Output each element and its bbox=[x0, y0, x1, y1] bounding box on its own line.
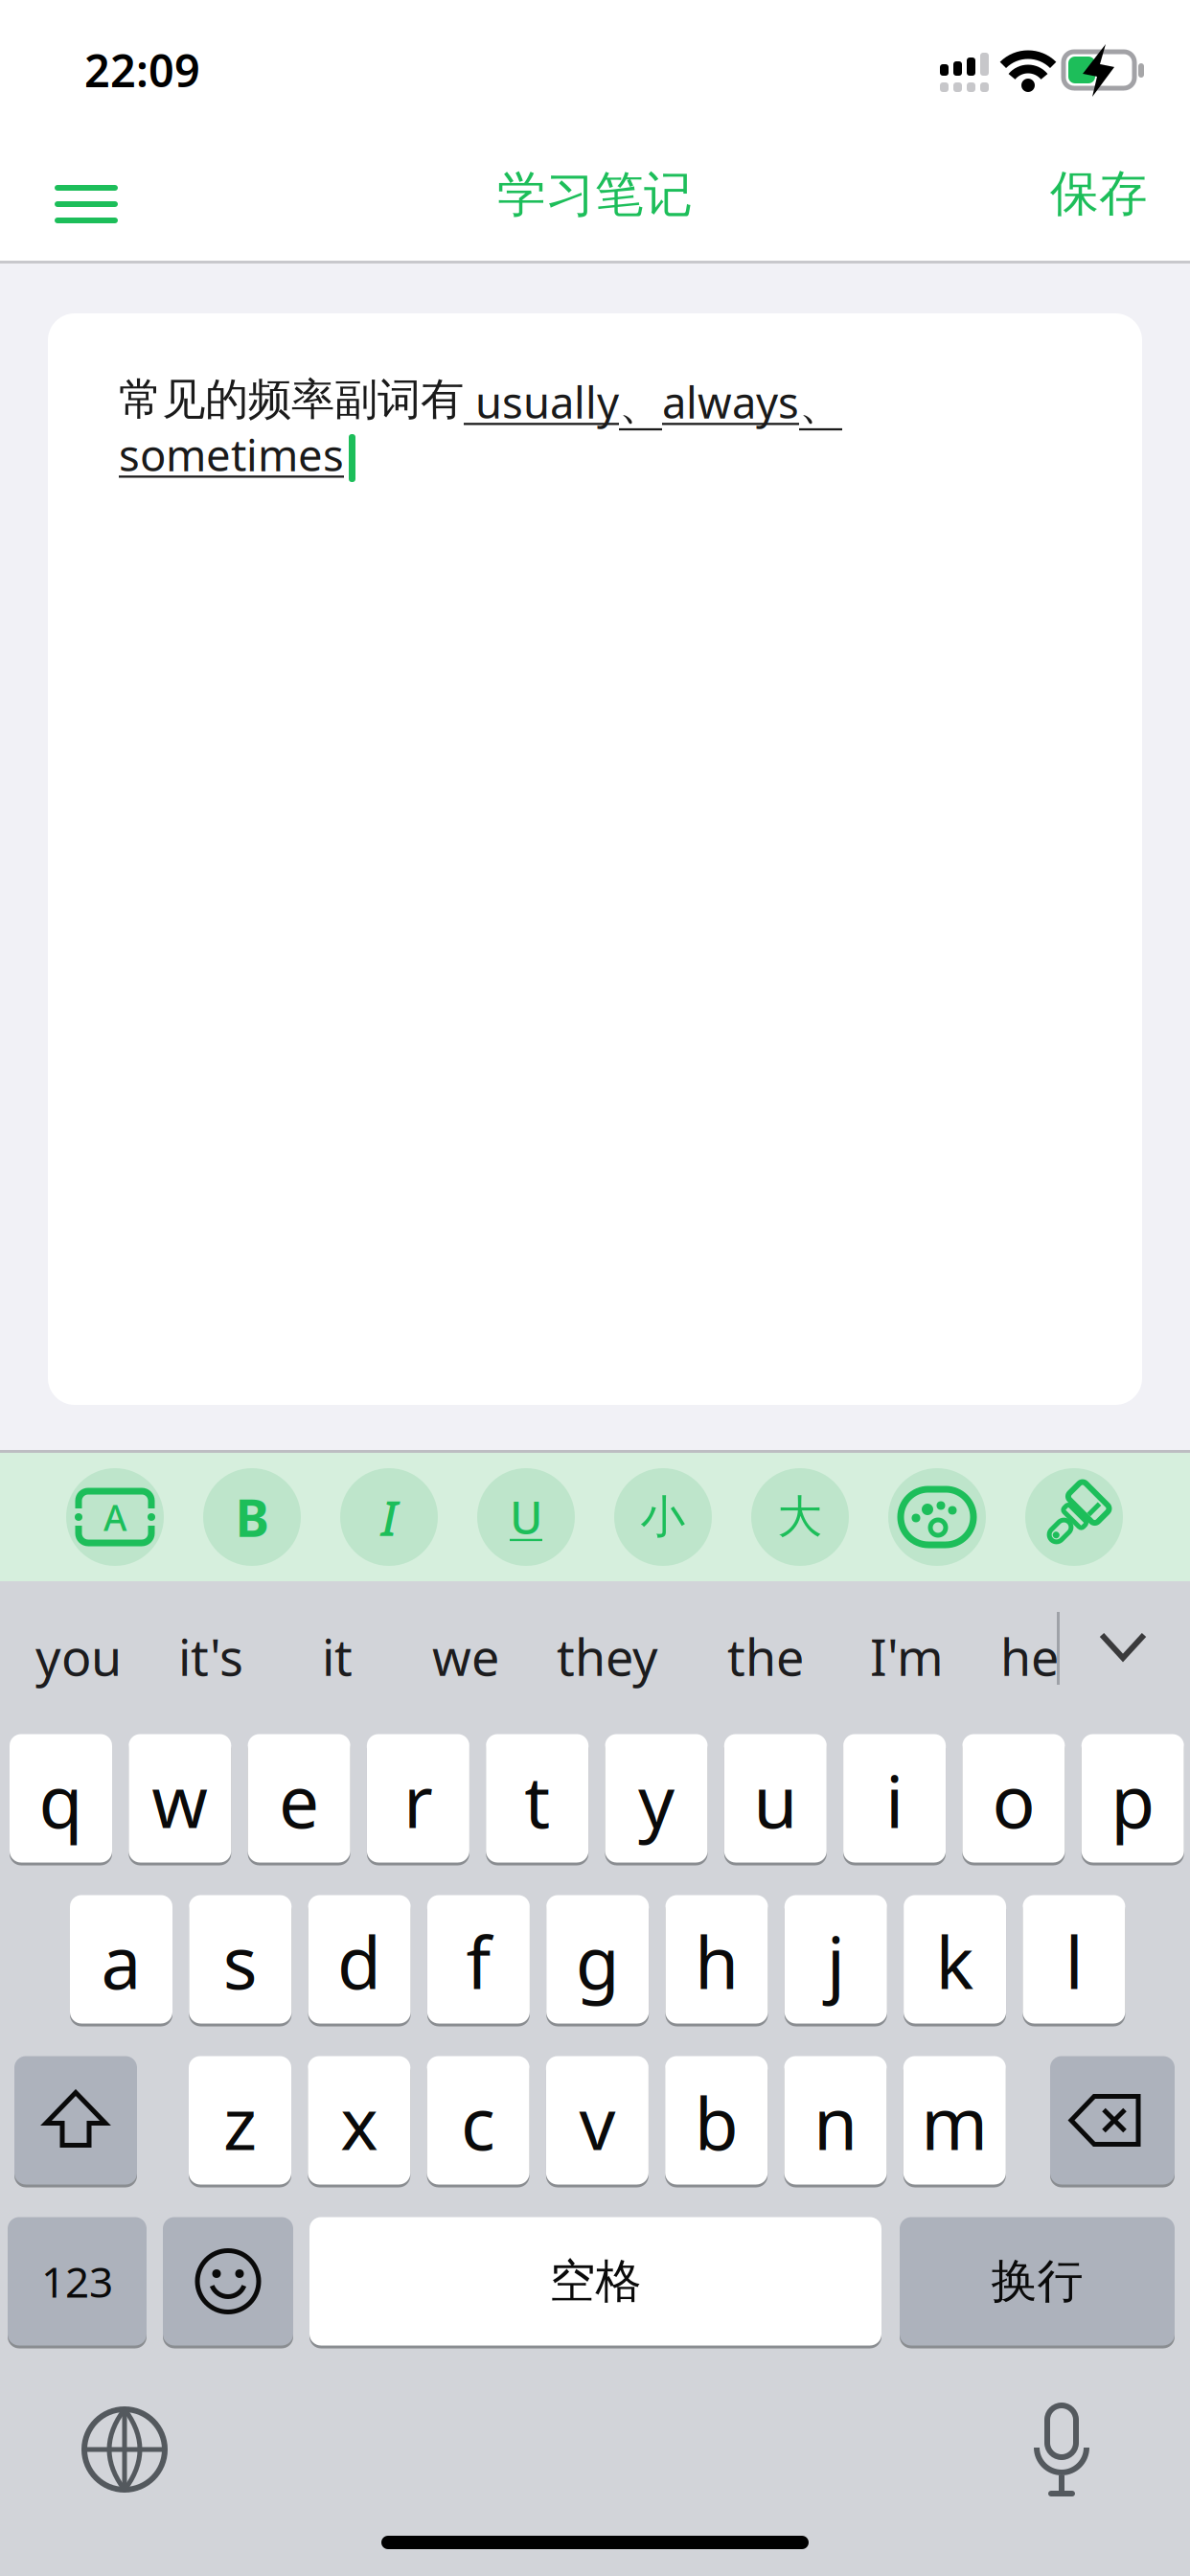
button[interactable]: e bbox=[248, 1733, 350, 1864]
button[interactable]: he bbox=[1000, 1623, 1059, 1690]
button[interactable]: z bbox=[189, 2055, 291, 2186]
button[interactable]: m bbox=[903, 2055, 1006, 2186]
button[interactable]: q bbox=[10, 1733, 112, 1864]
button[interactable]: o bbox=[962, 1733, 1065, 1864]
staticText: q bbox=[39, 1753, 83, 1848]
button[interactable]: y bbox=[605, 1733, 708, 1864]
staticText: j bbox=[827, 1914, 845, 2009]
staticText: 保存 bbox=[1050, 164, 1148, 223]
staticText: v bbox=[579, 2075, 616, 2170]
button[interactable]: Hide predictions bbox=[0, 0, 1190, 2576]
button[interactable]: v bbox=[546, 2055, 649, 2186]
staticText: y bbox=[638, 1753, 675, 1848]
button[interactable]: it bbox=[322, 1623, 353, 1690]
button[interactable]: Highlight bbox=[1025, 1468, 1123, 1566]
staticText: you bbox=[35, 1623, 122, 1690]
button[interactable]: Shift bbox=[14, 2055, 137, 2186]
staticText: 大 bbox=[778, 1490, 823, 1544]
staticText: s bbox=[223, 1914, 258, 2009]
staticText: i bbox=[885, 1753, 904, 1848]
staticText: sometimes bbox=[119, 425, 344, 483]
button[interactable]: 保存 bbox=[1042, 156, 1156, 231]
button[interactable]: Dictate bbox=[1033, 2405, 1090, 2497]
staticText: r bbox=[403, 1753, 433, 1848]
button[interactable]: u bbox=[724, 1733, 827, 1864]
staticText: b bbox=[694, 2075, 738, 2170]
staticText: A bbox=[103, 1493, 126, 1541]
button[interactable]: Italic bbox=[340, 1468, 438, 1566]
staticText: I bbox=[381, 1485, 397, 1549]
staticText: l bbox=[1065, 1914, 1083, 2009]
button[interactable]: 123 bbox=[8, 2216, 147, 2347]
staticText: w bbox=[152, 1753, 208, 1848]
staticText: usually、always、 bbox=[464, 373, 842, 431]
button[interactable]: 空格 bbox=[309, 2216, 881, 2347]
button[interactable]: Next keyboard bbox=[84, 2409, 165, 2490]
staticText: o bbox=[992, 1753, 1035, 1848]
button[interactable]: a bbox=[70, 1894, 172, 2025]
staticText: g bbox=[576, 1914, 620, 2009]
button[interactable]: s bbox=[189, 1894, 292, 2025]
staticText: d bbox=[337, 1914, 381, 2009]
button[interactable]: Emoji bbox=[163, 2216, 293, 2347]
button[interactable]: f bbox=[427, 1894, 530, 2025]
staticText: m bbox=[921, 2075, 988, 2170]
button[interactable]: Larger text bbox=[751, 1468, 849, 1566]
button[interactable]: the bbox=[727, 1623, 804, 1690]
staticText: they bbox=[557, 1623, 658, 1690]
staticText: n bbox=[813, 2075, 858, 2170]
staticText: B bbox=[235, 1483, 269, 1551]
button[interactable]: Underline bbox=[477, 1468, 575, 1566]
button[interactable]: Text color bbox=[888, 1468, 986, 1566]
staticText: h bbox=[695, 1914, 739, 2009]
button[interactable]: p bbox=[1081, 1733, 1184, 1864]
button[interactable]: x bbox=[308, 2055, 410, 2186]
staticText: 换行 bbox=[991, 2253, 1083, 2310]
staticText: 学习笔记 bbox=[497, 165, 693, 224]
button[interactable]: Smaller text bbox=[614, 1468, 712, 1566]
button[interactable]: 换行 bbox=[900, 2216, 1175, 2347]
staticText: 小 bbox=[641, 1490, 686, 1544]
button[interactable]: j bbox=[785, 1894, 887, 2025]
staticText: c bbox=[461, 2075, 495, 2170]
button[interactable]: Menu bbox=[45, 175, 127, 233]
button[interactable]: d bbox=[308, 1894, 411, 2025]
button[interactable]: h bbox=[665, 1894, 768, 2025]
staticText: f bbox=[466, 1914, 491, 2009]
staticText: I'm bbox=[870, 1623, 944, 1690]
staticText: t bbox=[524, 1753, 550, 1848]
button[interactable]: l bbox=[1023, 1894, 1125, 2025]
staticText: it's bbox=[178, 1623, 243, 1690]
staticText: k bbox=[936, 1914, 974, 2009]
button[interactable]: n bbox=[784, 2055, 887, 2186]
button[interactable]: Bold bbox=[203, 1468, 301, 1566]
button[interactable]: I'm bbox=[870, 1623, 944, 1690]
staticText: it bbox=[322, 1623, 353, 1690]
staticText: he bbox=[1000, 1623, 1059, 1690]
button[interactable]: i bbox=[843, 1733, 946, 1864]
staticText: 常见的频率副词有 bbox=[119, 373, 464, 426]
staticText: the bbox=[727, 1623, 804, 1690]
staticText: u bbox=[753, 1753, 797, 1848]
staticText: 22:09 bbox=[84, 40, 200, 100]
button[interactable]: k bbox=[904, 1894, 1006, 2025]
staticText: 123 bbox=[41, 2253, 113, 2309]
button[interactable]: we bbox=[432, 1623, 499, 1690]
staticText: x bbox=[340, 2075, 378, 2170]
staticText: we bbox=[432, 1623, 499, 1690]
button[interactable]: r bbox=[367, 1733, 469, 1864]
button[interactable]: Delete bbox=[1050, 2055, 1175, 2186]
button[interactable]: you bbox=[35, 1623, 122, 1690]
button[interactable]: t bbox=[486, 1733, 588, 1864]
button[interactable]: g bbox=[546, 1894, 649, 2025]
button[interactable]: they bbox=[557, 1623, 658, 1690]
button[interactable]: c bbox=[427, 2055, 529, 2186]
staticText: e bbox=[279, 1753, 319, 1848]
staticText: z bbox=[223, 2075, 257, 2170]
button[interactable]: b bbox=[665, 2055, 768, 2186]
button[interactable]: w bbox=[129, 1733, 231, 1864]
button[interactable]: Text style bbox=[66, 1468, 164, 1566]
staticText: a bbox=[101, 1914, 141, 2009]
button[interactable]: it's bbox=[178, 1623, 243, 1690]
staticText: p bbox=[1111, 1753, 1155, 1848]
